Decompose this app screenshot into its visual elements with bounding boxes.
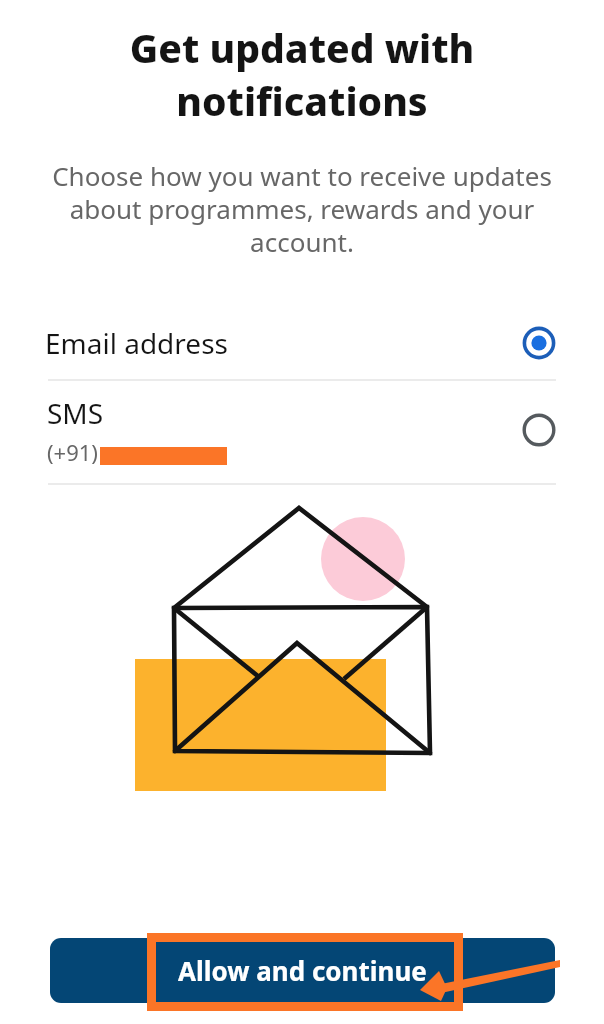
button[interactable]: Email address selected — [517, 321, 561, 365]
staticText: Get updated with notifications — [16, 21, 588, 128]
staticText: Choose how you want to receive updates a… — [48, 158, 556, 260]
staticText: Allow and continue — [178, 953, 427, 988]
staticText: SMS — [47, 394, 104, 432]
button[interactable]: Allow and continue — [50, 938, 555, 1003]
button[interactable]: SMS not selected — [517, 408, 561, 452]
button[interactable]: Email address — [0, 308, 604, 377]
staticText: (+91) — [47, 437, 98, 467]
staticText: Email address — [45, 324, 228, 362]
button[interactable]: SMS — [0, 379, 604, 481]
